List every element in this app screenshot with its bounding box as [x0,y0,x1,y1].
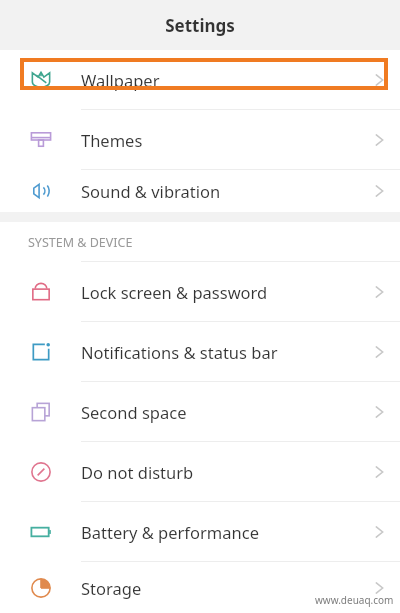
staticText: Battery & performance [81,521,259,543]
staticText: Second space [81,401,187,423]
staticText: Wallpaper [81,69,160,91]
staticText: www.deuaq.com [315,593,394,607]
button[interactable]: Battery & performance [0,502,400,562]
staticText: Do not disturb [81,461,194,483]
staticText: Sound & vibration [81,180,221,202]
staticText: Themes [81,129,143,151]
button[interactable]: Notifications & status bar [0,322,400,382]
staticText: Storage [81,577,142,599]
button[interactable]: Storage [0,562,400,613]
button[interactable]: Second space [0,382,400,442]
staticText: SYSTEM & DEVICE [28,234,133,251]
button[interactable]: Sound & vibration [0,170,400,212]
button[interactable]: Lock screen & password [0,262,400,322]
staticText: Settings [165,14,235,37]
staticText: Notifications & status bar [81,341,278,363]
button[interactable]: Do not disturb [0,442,400,502]
button[interactable]: Wallpaper [0,50,400,110]
button[interactable]: Themes [0,110,400,170]
staticText: Lock screen & password [81,281,268,303]
